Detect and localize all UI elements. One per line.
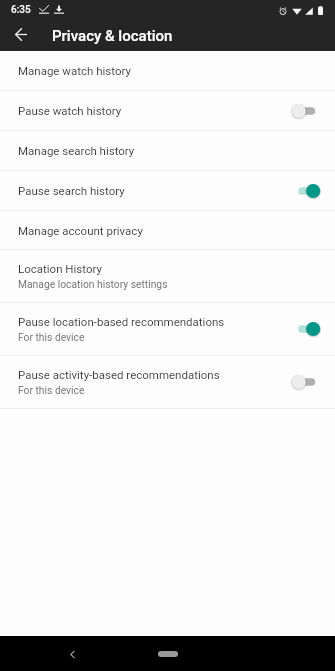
staticText: Pause watch history [18,104,122,117]
staticText: Manage watch history [18,64,131,77]
button[interactable]: Toggle off [292,100,323,122]
staticText: Location History [18,262,102,275]
button[interactable]: Navigate up [6,21,35,50]
button[interactable]: Manage search history [0,131,335,170]
button[interactable]: Home [158,651,178,657]
staticText: 6:35 [11,4,31,16]
staticText: Manage location history settings [18,278,168,290]
button[interactable]: Pause location-based recommendations [0,303,335,355]
button[interactable]: Manage account privacy [0,211,335,249]
button[interactable]: Toggle off [292,371,323,393]
button[interactable]: Pause activity-based recommendations [0,356,335,408]
staticText: For this device [18,384,85,396]
staticText: For this device [18,331,85,343]
button[interactable]: Toggle on [292,318,323,340]
button[interactable]: Toggle on [292,180,323,202]
button[interactable]: Manage watch history [0,51,335,90]
staticText: Pause search history [18,184,125,197]
button[interactable]: Back [61,643,83,665]
button[interactable]: Pause search history [0,171,335,210]
staticText: Privacy & location [52,27,173,45]
staticText: Pause location-based recommendations [18,315,225,328]
button[interactable]: Pause watch history [0,91,335,130]
staticText: Manage search history [18,144,135,157]
staticText: Pause activity-based recommendations [18,368,220,381]
button[interactable]: Location History [0,250,335,302]
staticText: Manage account privacy [18,224,143,237]
